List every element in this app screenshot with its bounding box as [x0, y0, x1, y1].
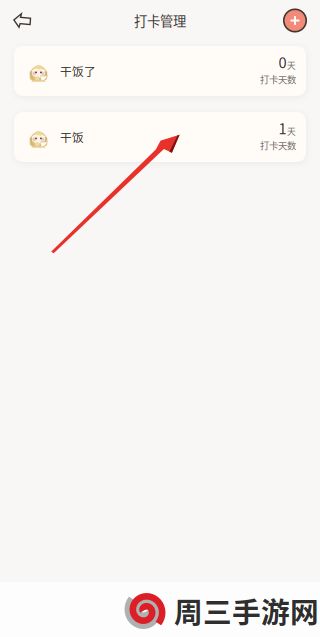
staticText: 打卡天数 — [260, 138, 296, 152]
staticText: 干饭 — [60, 128, 84, 145]
staticText: 干饭了 — [60, 62, 96, 79]
button[interactable]: Add — [274, 0, 320, 40]
staticText: 打卡管理 — [134, 11, 186, 30]
button[interactable]: 干饭了 — [14, 46, 306, 96]
staticText: 天 — [287, 125, 296, 137]
button[interactable]: Back — [0, 4, 40, 37]
button[interactable]: 干饭 — [14, 112, 306, 162]
staticText: 打卡天数 — [260, 72, 296, 86]
staticText: 0 — [278, 51, 286, 72]
staticText: 天 — [287, 59, 296, 71]
staticText: 周三手游网 — [174, 590, 319, 631]
staticText: 1 — [278, 117, 286, 138]
